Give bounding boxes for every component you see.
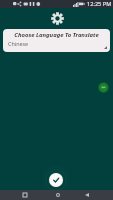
staticText: Chinese: [8, 40, 29, 47]
button[interactable]: Confirm: [49, 173, 63, 187]
button[interactable]: Recent apps: [18, 190, 31, 200]
button[interactable]: Settings: [48, 9, 66, 27]
staticText: Choose Language To Translate: [14, 31, 99, 39]
staticText: 12:25 PM: [87, 0, 112, 8]
button[interactable]: Back: [80, 190, 93, 200]
button[interactable]: Speak: [98, 82, 109, 93]
button[interactable]: Choose Language To Translate: [3, 29, 110, 52]
button[interactable]: Home: [51, 190, 64, 200]
